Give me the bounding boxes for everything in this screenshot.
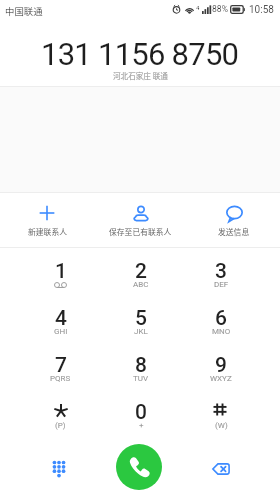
button[interactable]: Hide dialpad bbox=[37, 447, 81, 491]
staticText: 新建联系人 bbox=[28, 226, 67, 237]
staticText: PQRS bbox=[50, 374, 71, 383]
button[interactable]: 保存至已有联系人 bbox=[94, 193, 187, 247]
staticText: (P) bbox=[55, 421, 66, 430]
staticText: 8 bbox=[135, 353, 147, 374]
button[interactable]: 4 bbox=[20, 297, 101, 344]
staticText: MNO bbox=[212, 327, 231, 336]
button[interactable]: 7 bbox=[20, 344, 101, 391]
staticText: 9 bbox=[215, 353, 227, 374]
button[interactable]: 2 bbox=[101, 250, 181, 297]
button[interactable]: 5 bbox=[101, 297, 181, 344]
staticText: 88% bbox=[212, 4, 228, 14]
button[interactable]: Call bbox=[116, 444, 162, 490]
staticText: ABC bbox=[133, 280, 149, 289]
staticText: 131 1156 8750 bbox=[41, 36, 239, 72]
staticText: TUV bbox=[133, 374, 149, 383]
staticText: 3 bbox=[215, 259, 227, 280]
button[interactable]: (P) bbox=[20, 391, 101, 438]
staticText: 7 bbox=[55, 353, 67, 374]
staticText: 0 bbox=[135, 400, 147, 421]
button[interactable]: 3 bbox=[181, 250, 261, 297]
staticText: 4 bbox=[55, 306, 67, 327]
staticText: + bbox=[139, 421, 144, 430]
staticText: 河北石家庄 联通 bbox=[113, 70, 168, 81]
button[interactable]: (W) bbox=[181, 391, 261, 438]
staticText: 10:58 bbox=[249, 4, 274, 16]
staticText: 6 bbox=[215, 306, 227, 327]
staticText: GHI bbox=[54, 327, 68, 336]
button[interactable]: 发送信息 bbox=[187, 193, 280, 247]
button[interactable]: 1 bbox=[20, 250, 101, 297]
staticText: 5 bbox=[135, 306, 147, 327]
staticText: JKL bbox=[134, 327, 148, 336]
staticText: WXYZ bbox=[210, 374, 232, 383]
staticText: 4 bbox=[196, 4, 200, 11]
staticText: 中国联通 bbox=[5, 4, 43, 18]
staticText: (W) bbox=[215, 421, 228, 430]
button[interactable]: 6 bbox=[181, 297, 261, 344]
staticText: 2 bbox=[135, 259, 147, 280]
button[interactable]: 9 bbox=[181, 344, 261, 391]
staticText: 发送信息 bbox=[218, 226, 250, 237]
button[interactable]: 新建联系人 bbox=[0, 193, 94, 247]
button[interactable]: 8 bbox=[101, 344, 181, 391]
staticText: 1 bbox=[55, 259, 67, 280]
button[interactable]: Delete bbox=[199, 447, 243, 491]
staticText: 保存至已有联系人 bbox=[109, 226, 172, 237]
staticText: DEF bbox=[214, 280, 229, 289]
button[interactable]: 0 bbox=[101, 391, 181, 438]
